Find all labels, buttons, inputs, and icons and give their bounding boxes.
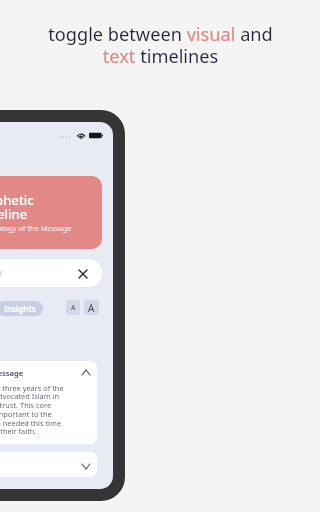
staticText: For the first three years of the xyxy=(0,383,64,393)
button[interactable]: Prophetic Timeline xyxy=(0,176,102,249)
button[interactable]: Insights xyxy=(0,301,43,316)
staticText: toggle between visual and text timelines xyxy=(48,22,273,69)
staticText: Prophetic Timeline xyxy=(0,191,34,223)
button[interactable]: The Message xyxy=(0,361,97,444)
button[interactable]: Smaller text xyxy=(66,300,80,315)
button[interactable]: Collapse xyxy=(79,366,92,379)
button[interactable]: Hijrah xyxy=(0,452,97,477)
button[interactable]: Expand xyxy=(79,460,92,473)
staticText: believers who needed this time xyxy=(0,418,62,428)
button[interactable]: Search xyxy=(0,259,102,287)
staticText: group was important to the xyxy=(0,409,52,419)
staticText: Insights xyxy=(4,303,36,314)
staticText: Search xyxy=(0,267,2,279)
staticText: The Message xyxy=(0,368,24,378)
staticText: he could trust. This core xyxy=(0,400,52,410)
button[interactable]: Larger text xyxy=(84,300,99,315)
staticText: A xyxy=(71,303,76,313)
button[interactable]: Clear search xyxy=(76,267,89,280)
staticText: Chronology of the Message xyxy=(0,223,72,233)
staticText: strengthen their faith. xyxy=(0,426,37,436)
staticText: Prophet advocated Islam in xyxy=(0,391,60,401)
staticText: A xyxy=(88,301,95,315)
